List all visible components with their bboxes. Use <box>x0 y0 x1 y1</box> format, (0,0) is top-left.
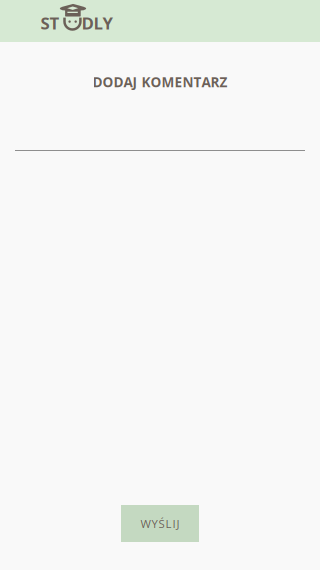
staticText: ST <box>41 12 60 34</box>
button[interactable]: WYŚLIJ <box>121 505 199 542</box>
staticText: DLY <box>82 12 113 34</box>
staticText: WYŚLIJ <box>140 516 179 531</box>
staticText: DODAJ KOMENTARZ <box>92 73 227 91</box>
